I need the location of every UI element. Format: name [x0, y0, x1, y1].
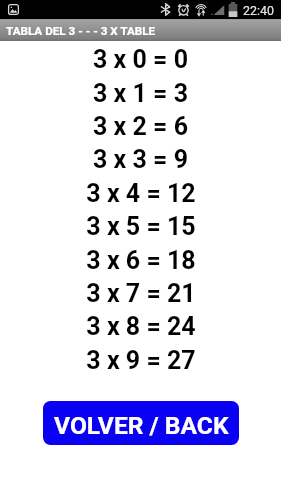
staticText: TABLA DEL 3 - - - 3 X TABLE	[6, 24, 156, 38]
staticText: 3 x 6 = 18	[86, 246, 196, 272]
staticText: 3 x 7 = 21	[86, 279, 196, 305]
staticText: 3 x 8 = 24	[86, 312, 196, 338]
staticText: VOLVER / BACK	[54, 411, 229, 440]
staticText: 3 x 2 = 6	[93, 112, 188, 138]
staticText: 22:40	[243, 3, 274, 18]
staticText: 3 x 3 = 9	[93, 145, 188, 171]
staticText: 3 x 9 = 27	[86, 346, 196, 372]
staticText: 3 x 5 = 15	[86, 212, 196, 238]
staticText: 3 x 0 = 0	[93, 45, 188, 71]
button[interactable]: VOLVER / BACK	[43, 401, 239, 445]
other: Screenshot captured	[8, 4, 19, 15]
staticText: 3 x 4 = 12	[86, 179, 196, 205]
staticText: 3 x 1 = 3	[93, 79, 188, 105]
